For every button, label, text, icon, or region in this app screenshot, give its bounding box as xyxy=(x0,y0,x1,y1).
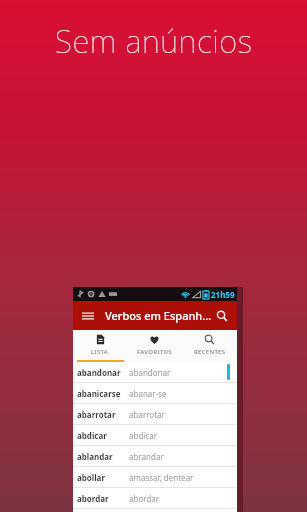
staticText: abandonar xyxy=(129,367,171,378)
staticText: abanar-se xyxy=(129,388,167,399)
staticText: abarrotar xyxy=(77,409,116,420)
button[interactable]: ablandar xyxy=(73,446,237,466)
staticText: LISTA xyxy=(91,348,109,356)
button[interactable]: abollar xyxy=(73,467,237,487)
staticText: FAVORITOS xyxy=(137,348,172,356)
staticText: ablandar xyxy=(77,451,113,462)
button[interactable]: FAVORITOS xyxy=(127,330,182,360)
button[interactable]: abanicarse xyxy=(73,383,237,403)
staticText: 21h59 xyxy=(211,289,235,300)
button[interactable]: abordar xyxy=(73,488,237,508)
staticText: abanicarse xyxy=(77,388,121,399)
button[interactable]: RECENTES xyxy=(182,330,237,360)
staticText: abordar xyxy=(77,493,109,504)
staticText: Sem anúncios xyxy=(55,20,253,62)
staticText: abdicar xyxy=(77,430,107,441)
staticText: abandonar xyxy=(77,367,121,378)
staticText: abrandar xyxy=(129,451,164,462)
button[interactable]: abandonar xyxy=(73,362,237,382)
button[interactable]: Search xyxy=(212,306,232,326)
staticText: abarrotar xyxy=(129,409,165,420)
staticText: abordar xyxy=(129,493,160,504)
button[interactable]: LISTA xyxy=(73,330,127,360)
button[interactable]: Menu xyxy=(78,306,98,326)
staticText: abdicar xyxy=(129,430,158,441)
button[interactable]: abarrotar xyxy=(73,404,237,424)
staticText: amassar, dentear xyxy=(129,472,194,483)
staticText: abollar xyxy=(77,472,105,483)
staticText: RECENTES xyxy=(194,348,226,356)
staticText: Verbos em Espanh… xyxy=(105,308,212,323)
button[interactable]: abdicar xyxy=(73,425,237,445)
